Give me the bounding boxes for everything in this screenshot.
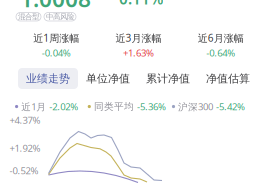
staticText: +4.37%: [9, 113, 40, 127]
staticText: 同类平均: [94, 100, 134, 113]
staticText: 0.11%: [119, 0, 163, 9]
staticText: 单位净值: [86, 72, 130, 85]
staticText: +1.63%: [123, 46, 154, 59]
staticText: 近6月涨幅: [198, 31, 244, 45]
staticText: -5.42%: [216, 100, 245, 113]
staticText: -5.36%: [137, 100, 166, 113]
staticText: 累计净值: [146, 72, 190, 85]
button[interactable]: 单位净值: [78, 68, 138, 89]
button[interactable]: 业绩走势: [18, 68, 78, 89]
staticText: -0.64%: [206, 46, 235, 59]
staticText: 中高风险: [46, 12, 74, 21]
staticText: 业绩走势: [26, 72, 70, 85]
button[interactable]: 净值估算: [198, 68, 258, 89]
button[interactable]: 累计净值: [138, 68, 198, 89]
staticText: 近3月涨幅: [115, 31, 161, 45]
staticText: -2.02%: [49, 100, 78, 113]
staticText: 近1月: [21, 100, 46, 113]
staticText: 1.0008: [20, 0, 91, 14]
staticText: +1.92%: [9, 141, 40, 155]
staticText: 混合型: [18, 12, 39, 21]
staticText: 净值估算: [206, 72, 250, 85]
staticText: -0.04%: [42, 46, 71, 59]
staticText: 沪深300: [178, 100, 213, 113]
staticText: 近1周涨幅: [33, 31, 79, 45]
staticText: -0.52%: [9, 164, 38, 177]
